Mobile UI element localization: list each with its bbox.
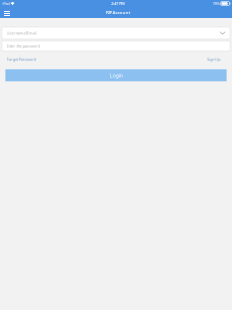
staticText: Forgot Password: [7, 56, 36, 62]
staticText: Enter the password: [7, 43, 40, 49]
staticText: iPad: [2, 1, 9, 6]
button[interactable]: Sign Up: [204, 54, 232, 64]
button[interactable]: Login: [5, 69, 227, 81]
staticText: Sign Up: [207, 56, 220, 62]
button[interactable]: Forgot Password: [0, 54, 39, 64]
staticText: 2:47 PM: [111, 1, 125, 6]
staticText: Username/Email: [7, 30, 37, 36]
staticText: P2P Account: [105, 10, 130, 15]
staticText: Login: [109, 72, 122, 79]
button[interactable]: Menu: [0, 8, 14, 18]
staticText: 78%: [213, 1, 220, 6]
